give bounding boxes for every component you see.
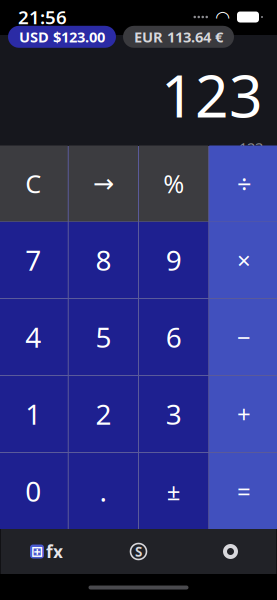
staticText: 5: [95, 318, 111, 356]
staticText: S: [135, 543, 142, 560]
staticText: ×: [237, 244, 251, 276]
button[interactable]: 2: [69, 376, 138, 452]
button[interactable]: Settings: [184, 529, 276, 574]
staticText: fx: [46, 540, 63, 563]
staticText: 1: [25, 395, 41, 433]
staticText: 4: [25, 318, 41, 356]
staticText: ◠: [216, 7, 229, 27]
staticText: 8: [95, 241, 111, 279]
button[interactable]: 1: [0, 376, 68, 452]
button[interactable]: −: [209, 299, 277, 375]
staticText: +: [237, 398, 251, 430]
button[interactable]: ±: [139, 453, 208, 529]
staticText: 7: [25, 241, 41, 279]
button[interactable]: 6: [139, 299, 208, 375]
button[interactable]: Currency exchange: [92, 529, 184, 574]
button[interactable]: 5: [69, 299, 138, 375]
staticText: 6: [166, 318, 182, 356]
button[interactable]: Calculator: [0, 529, 92, 574]
staticText: 9: [166, 241, 182, 279]
staticText: 3: [166, 395, 182, 433]
button[interactable]: %: [139, 145, 208, 221]
staticText: 2: [95, 395, 111, 433]
button[interactable]: 9: [139, 222, 208, 298]
staticText: →: [93, 169, 114, 198]
button[interactable]: 7: [0, 222, 68, 298]
button[interactable]: C: [0, 145, 68, 221]
staticText: ±: [167, 475, 181, 507]
button[interactable]: USD $123.00: [8, 26, 116, 48]
button[interactable]: .: [69, 453, 138, 529]
staticText: ÷: [237, 167, 251, 200]
staticText: .: [99, 472, 107, 510]
button[interactable]: 3: [139, 376, 208, 452]
button[interactable]: 4: [0, 299, 68, 375]
staticText: C: [25, 167, 41, 200]
staticText: −: [237, 321, 251, 353]
button[interactable]: →: [69, 145, 138, 221]
button[interactable]: +: [209, 376, 277, 452]
staticText: EUR 113.64 €: [134, 27, 223, 47]
staticText: %: [163, 167, 184, 200]
staticText: 123: [161, 56, 263, 134]
staticText: 0: [25, 472, 41, 510]
staticText: 21:56: [18, 5, 67, 29]
staticText: USD $123.00: [19, 27, 105, 47]
staticText: =: [237, 475, 251, 507]
button[interactable]: 8: [69, 222, 138, 298]
button[interactable]: ÷: [209, 145, 277, 221]
button[interactable]: 0: [0, 453, 68, 529]
staticText: ⊞: [31, 543, 43, 560]
button[interactable]: ×: [209, 222, 277, 298]
staticText: 123: [239, 138, 263, 157]
button[interactable]: EUR 113.64 €: [123, 26, 234, 48]
button[interactable]: =: [209, 453, 277, 529]
